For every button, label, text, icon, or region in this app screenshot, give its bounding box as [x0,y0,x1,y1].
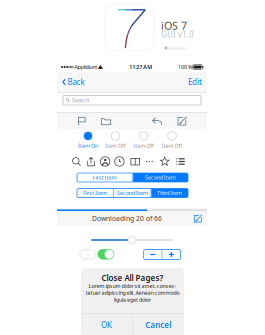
button[interactable]: Share [85,156,96,167]
button[interactable]: Search [63,95,201,105]
staticText: tetuer adipiscing elit. Aenean commodo [85,289,179,296]
button[interactable]: Increment [162,249,180,259]
button[interactable]: Cancel [133,314,184,335]
button[interactable]: Third Item [151,188,188,197]
staticText: Search [72,97,89,104]
button[interactable]: Bookmarks [130,156,141,167]
button[interactable]: Compose [193,213,203,223]
staticText: 11:27 AM [129,63,152,71]
staticText: Lorem ipsum dolor sit amet, consec- [88,282,176,290]
staticText: Close All Pages? [101,273,163,283]
staticText: iOS 7 [161,18,187,33]
button[interactable]: Reply [149,114,165,128]
staticText: Back [67,77,84,87]
button[interactable]: Decrement [144,249,162,259]
button[interactable]: Shared links [100,156,111,167]
staticText: Applidium [73,63,97,71]
button[interactable]: More [144,156,155,167]
staticText: Item Off [105,142,126,149]
button[interactable]: Second Item [114,188,151,197]
button[interactable]: Item Off [101,130,129,151]
button[interactable]: Toggle on [98,249,114,259]
staticText: Applidium [169,45,187,51]
staticText: First Item [83,189,107,197]
button[interactable]: Search [71,156,82,167]
button[interactable]: Favorites [159,156,170,167]
button[interactable]: First Item [77,188,113,197]
staticText: Third Item [157,189,182,197]
staticText: ligula eget dolor [114,296,151,303]
button[interactable]: Item Off [130,130,158,151]
button[interactable]: Back [57,72,89,92]
staticText: Second Item [145,174,176,181]
button[interactable]: Flag [73,114,89,128]
staticText: 100 % [178,63,192,71]
button[interactable]: Item Off [158,130,186,151]
staticText: OK [101,320,112,330]
button[interactable]: OK [81,314,132,335]
button[interactable]: Toggle off [80,249,96,259]
staticText: Downloading 20 of 66 [92,214,162,223]
staticText: Edit [188,77,202,87]
button[interactable]: Edit [183,72,207,92]
button[interactable]: History [114,156,125,167]
staticText: Second Item [117,189,148,197]
staticText: First Item [93,174,117,181]
button[interactable]: First Item [77,173,132,182]
button[interactable]: Second Item [133,173,188,182]
staticText: GUI v1.0 [161,29,194,40]
staticText: Item Off [133,142,154,149]
staticText: Cancel [145,320,171,330]
button[interactable]: Reading list [175,156,186,167]
staticText: Item On [78,142,98,149]
staticText: Item Off [161,142,182,149]
button[interactable]: Compose [174,114,190,128]
button[interactable]: Move to folder [98,114,114,128]
button[interactable]: Item On [74,130,102,151]
